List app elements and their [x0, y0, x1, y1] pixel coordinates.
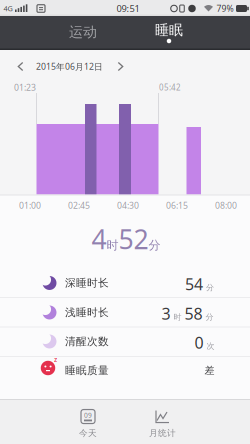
button[interactable]: 运动 [43, 15, 123, 49]
staticText: 02:45 [68, 200, 90, 211]
staticText: 3 [161, 303, 170, 324]
staticText: 09:51 [116, 2, 139, 15]
staticText: 52 [118, 221, 148, 257]
staticText: 时 [106, 238, 118, 253]
staticText: 次 [206, 341, 214, 351]
button[interactable]: Previous day [10, 56, 30, 76]
staticText: 4G [3, 3, 12, 13]
staticText: 06:15 [166, 200, 188, 211]
staticText: z [54, 355, 57, 364]
staticText: 时 [173, 312, 181, 322]
staticText: 09 [84, 410, 92, 420]
staticText: 01:23 [14, 82, 36, 93]
staticText: 54 [185, 273, 203, 295]
staticText: 今天 [79, 427, 97, 438]
staticText: 深睡时长 [65, 276, 109, 290]
staticText: 差 [204, 364, 214, 377]
button[interactable]: 睡眠 [129, 15, 209, 49]
staticText: 分 [148, 238, 160, 253]
staticText: 58 [184, 303, 202, 324]
staticText: 清醒次数 [65, 335, 109, 348]
staticText: 浅睡时长 [65, 306, 109, 319]
staticText: 08:00 [215, 200, 237, 211]
button[interactable]: 09 [53, 402, 123, 444]
staticText: 04:30 [117, 200, 139, 211]
staticText: 分 [205, 312, 213, 322]
staticText: 分 [206, 282, 214, 293]
staticText: 4 [91, 221, 106, 257]
staticText: 79% [216, 3, 233, 14]
staticText: 05:42 [159, 82, 181, 93]
button[interactable]: 月统计 [127, 402, 197, 444]
staticText: 睡眠质量 [65, 364, 109, 377]
staticText: 01:00 [19, 200, 41, 211]
staticText: 0 [194, 332, 203, 353]
button[interactable]: Next day [110, 56, 130, 76]
staticText: 运动 [69, 23, 97, 41]
staticText: 月统计 [149, 427, 176, 438]
staticText: 2015年06月12日 [36, 61, 103, 72]
staticText: 睡眠 [155, 21, 183, 39]
